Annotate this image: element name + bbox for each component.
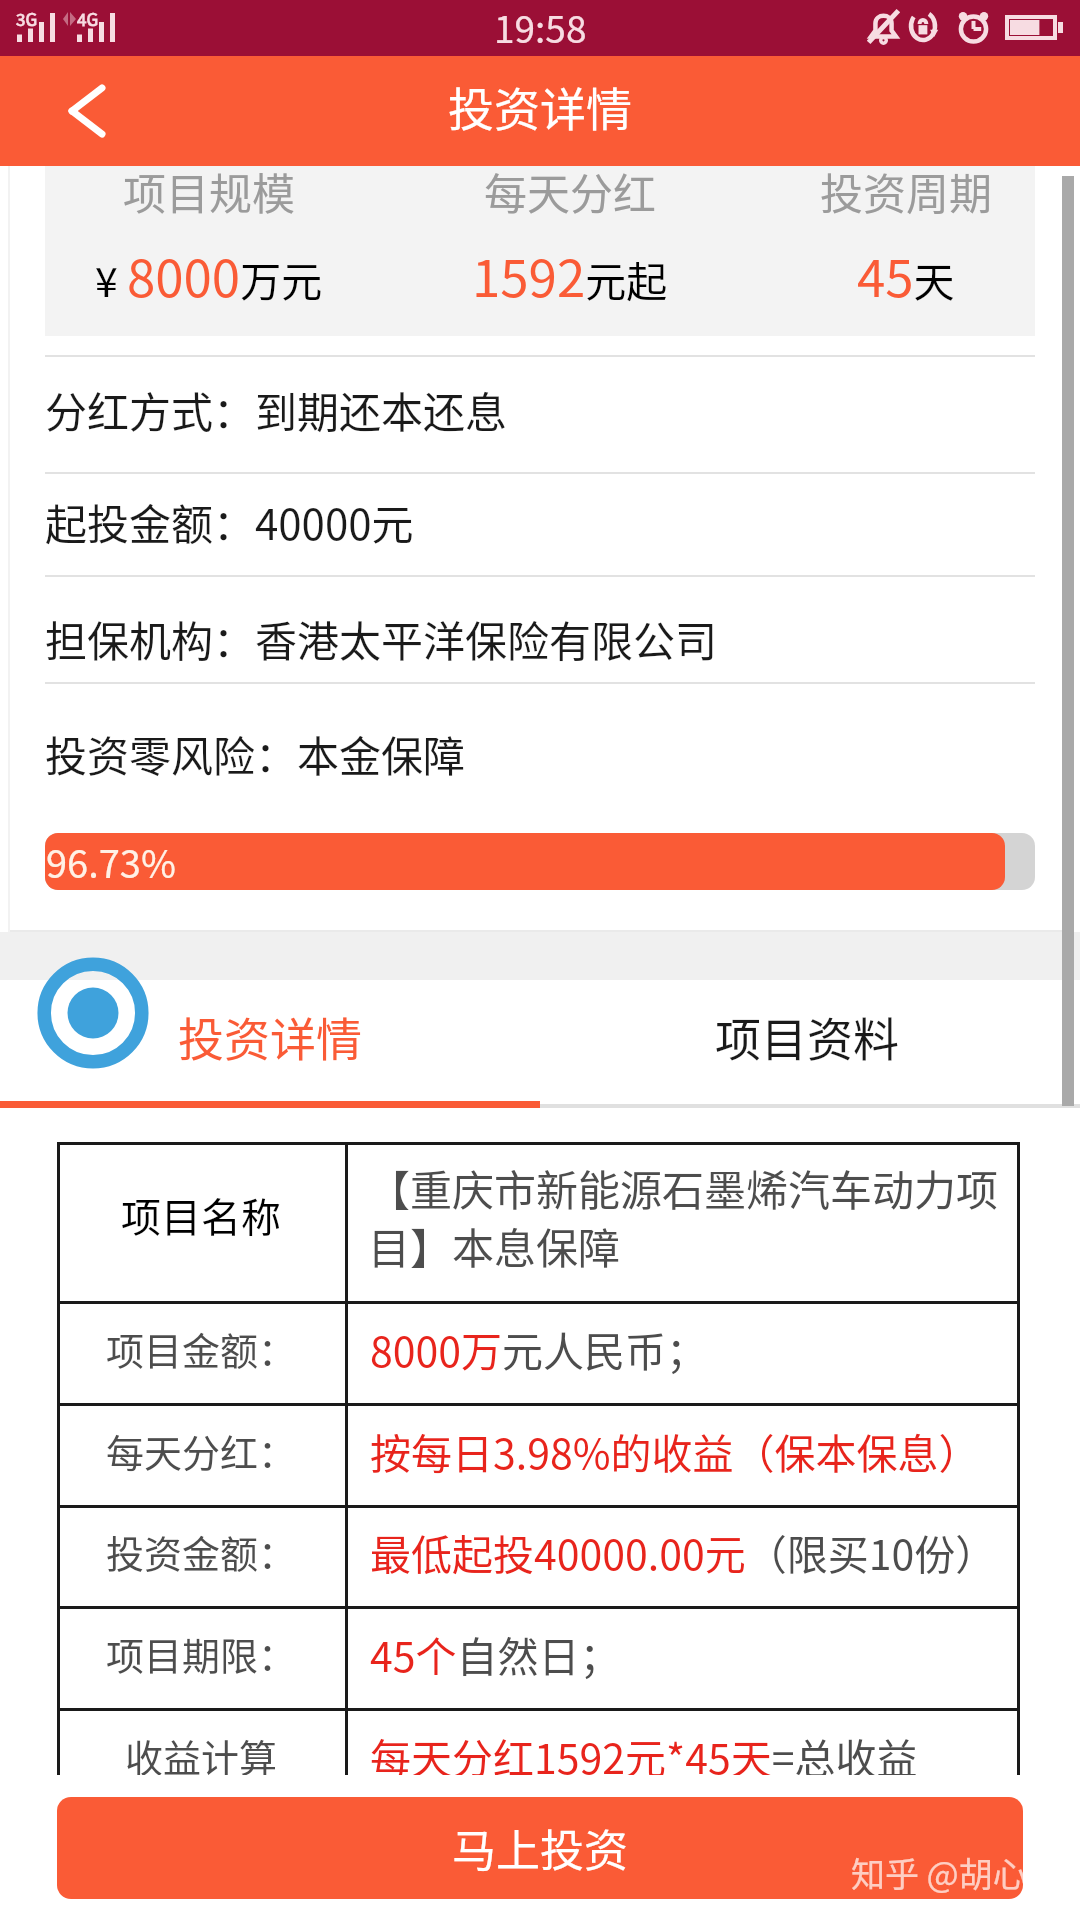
staticText: 按每日3.98%的收益（保本保息） [370, 1421, 980, 1480]
staticText: 项目期限： [106, 1626, 297, 1681]
staticText: 起投金额：40000元 [45, 491, 414, 551]
staticText: 担保机构：香港太平洋保险有限公司 [45, 608, 718, 668]
staticText: 8000万元人民币； [370, 1319, 708, 1378]
staticText: 项目金额： [106, 1321, 297, 1376]
staticText: 分红方式：到期还本还息 [45, 379, 508, 439]
staticText: 项目规模 [123, 160, 295, 220]
staticText: 投资周期 [820, 160, 992, 220]
button[interactable]: 项目资料 [540, 980, 1080, 1115]
staticText: 每天分红 [484, 160, 656, 220]
staticText: 项目资料 [715, 1003, 899, 1070]
staticText: 1592元起 [472, 238, 668, 308]
staticText: 每天分红： [106, 1423, 297, 1478]
staticText: 96.73% [46, 834, 176, 889]
staticText: 每天分红1592元*45天=总收益 [370, 1726, 918, 1785]
staticText: ¥ 8000万元 [95, 238, 323, 308]
staticText: 3G [16, 6, 38, 31]
button[interactable]: 投资详情 [0, 980, 540, 1115]
staticText: 45天 [857, 238, 955, 308]
staticText: 【重庆市新能源石墨烯汽车动力项目】本息保障 [368, 1157, 1020, 1276]
staticText: 投资金额： [106, 1524, 297, 1579]
staticText: 45个自然日； [370, 1624, 621, 1683]
staticText: 马上投资 [452, 1816, 628, 1880]
staticText: 项目名称 [121, 1186, 281, 1244]
staticText: 知乎 @胡心鱼 [851, 1848, 1061, 1896]
staticText: 投资详情 [178, 1003, 362, 1070]
staticText: 最低起投40000.00元（限买10份） [370, 1522, 997, 1581]
staticText: 19:58 [494, 0, 587, 54]
staticText: 4G [77, 6, 99, 31]
staticText: 收益计算 [125, 1728, 278, 1783]
staticText: 投资详情 [448, 73, 632, 140]
button[interactable]: Back [0, 56, 140, 166]
staticText: 投资零风险：本金保障 [45, 723, 466, 783]
button[interactable]: 马上投资 [57, 1797, 1023, 1899]
